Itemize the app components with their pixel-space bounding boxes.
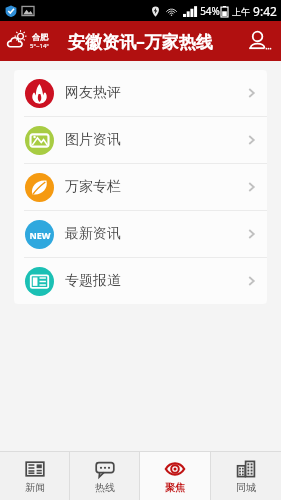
button[interactable]: 同城: [211, 452, 281, 500]
staticText: 最新资讯: [65, 225, 121, 243]
button[interactable]: Account: [242, 24, 276, 58]
button[interactable]: 图片资讯: [14, 117, 267, 163]
button[interactable]: 聚焦: [140, 452, 210, 500]
other: Weather: [6, 30, 28, 52]
staticText: 54%: [200, 4, 220, 18]
button[interactable]: NEW: [14, 211, 267, 257]
staticText: 专题报道: [65, 272, 121, 290]
staticText: NEW: [29, 229, 51, 241]
staticText: 新闻: [25, 481, 45, 494]
button[interactable]: 热线: [70, 452, 139, 500]
button[interactable]: 网友热评: [14, 70, 267, 116]
button[interactable]: Weather: [3, 28, 52, 54]
staticText: 合肥: [32, 32, 48, 42]
staticText: 万家专栏: [65, 178, 121, 196]
staticText: 9:42: [253, 3, 277, 19]
staticText: 上午: [232, 6, 250, 17]
staticText: 安徽资讯–万家热线: [68, 30, 213, 53]
button[interactable]: 新闻: [0, 452, 69, 500]
staticText: 同城: [236, 481, 256, 494]
staticText: 图片资讯: [65, 131, 121, 149]
staticText: 5°~14°: [30, 42, 49, 50]
staticText: 网友热评: [65, 84, 121, 102]
staticText: 热线: [95, 481, 115, 494]
button[interactable]: 万家专栏: [14, 164, 267, 210]
button[interactable]: 专题报道: [14, 258, 267, 304]
staticText: 聚焦: [165, 481, 185, 494]
